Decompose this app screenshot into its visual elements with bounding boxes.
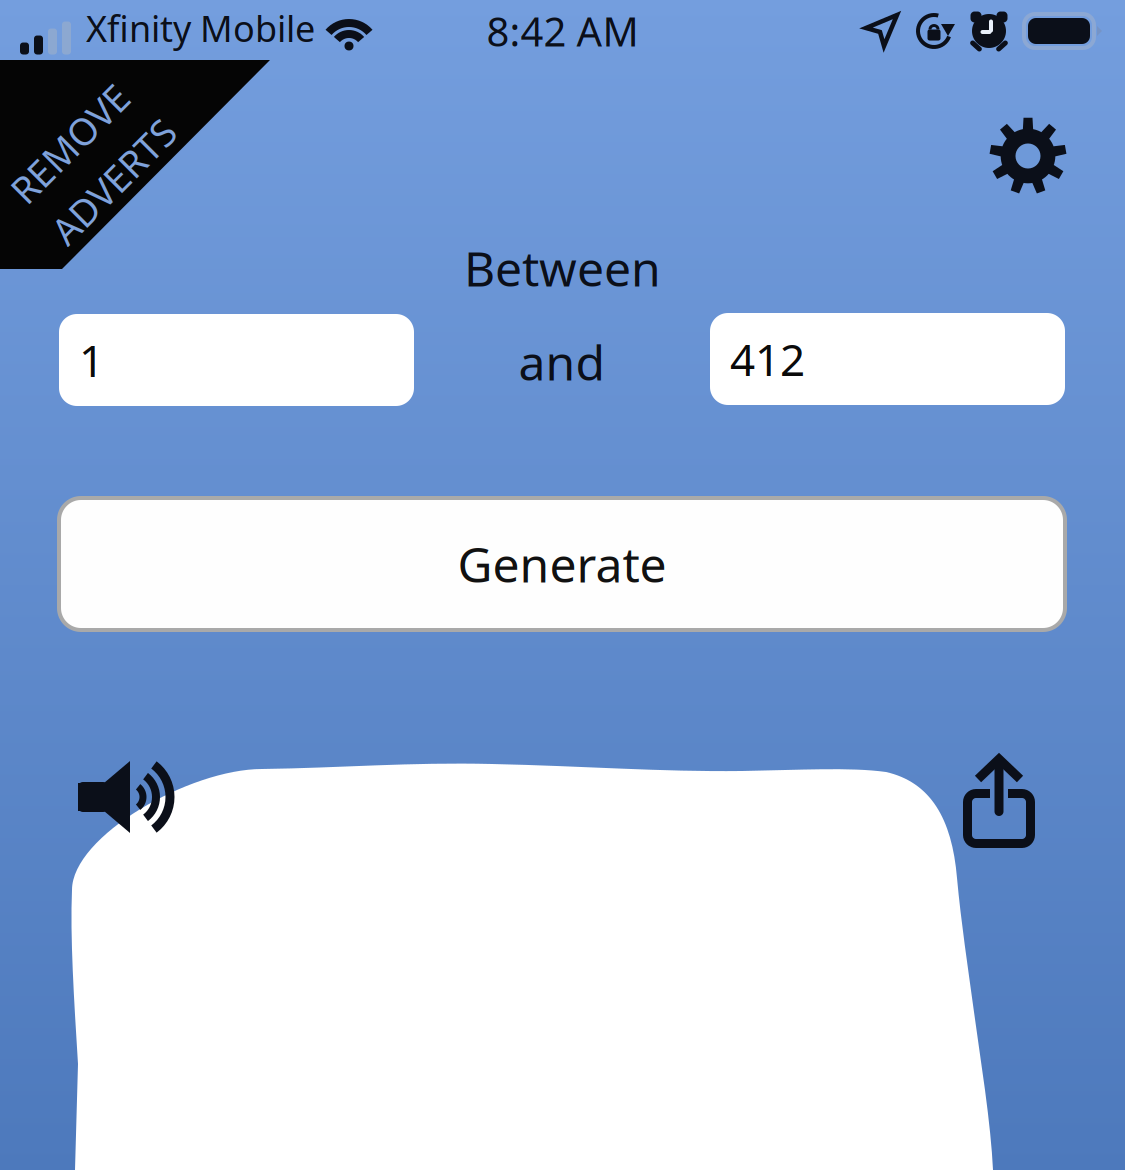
staticText: ADVERTS bbox=[12, 160, 170, 210]
button[interactable]: Remove adverts bbox=[0, 60, 270, 269]
button[interactable]: Settings bbox=[968, 96, 1088, 216]
button[interactable]: Speak result bbox=[78, 761, 178, 857]
staticText: 412 bbox=[730, 330, 805, 388]
staticText: 8:42 AM bbox=[486, 4, 638, 57]
button[interactable]: Share bbox=[963, 757, 1035, 849]
staticText: REMOVE bbox=[12, 102, 162, 152]
staticText: Between bbox=[464, 236, 661, 300]
button[interactable]: Generate bbox=[59, 498, 1065, 630]
button[interactable]: 1 bbox=[59, 314, 414, 406]
button[interactable]: 412 bbox=[710, 313, 1065, 405]
staticText: Generate bbox=[457, 532, 666, 596]
staticText: and bbox=[518, 330, 605, 394]
staticText: 1 bbox=[79, 331, 104, 389]
staticText: Xfinity Mobile bbox=[86, 4, 315, 52]
